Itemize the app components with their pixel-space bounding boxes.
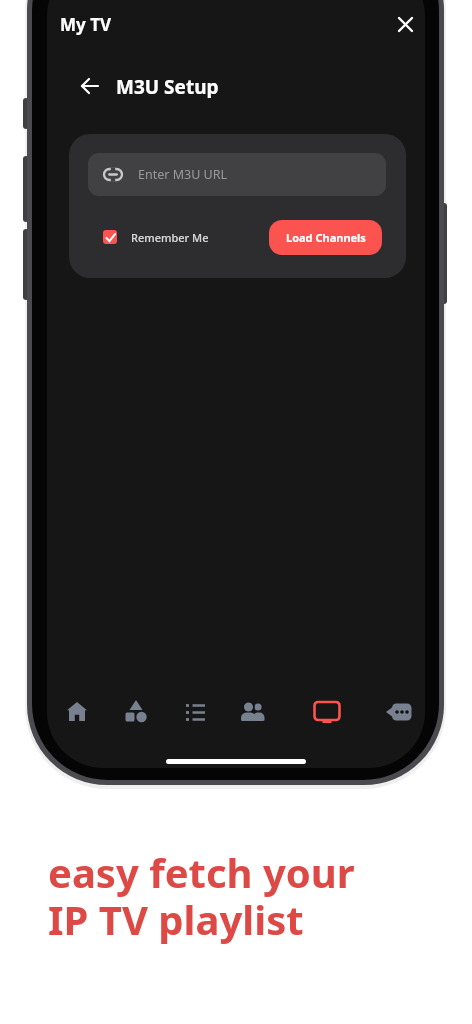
staticText: Load Channels — [286, 230, 366, 245]
button[interactable] — [114, 690, 158, 734]
button[interactable]: Enter M3U URL — [88, 153, 386, 196]
button[interactable]: Load Channels — [269, 220, 382, 255]
staticText: easy fetch your IP TV playlist — [48, 845, 355, 947]
staticText: Enter M3U URL — [138, 166, 227, 183]
button[interactable] — [55, 690, 99, 734]
staticText: My TV — [60, 13, 112, 36]
button[interactable] — [389, 12, 421, 36]
button[interactable] — [78, 74, 102, 98]
button[interactable] — [231, 690, 275, 734]
button[interactable] — [103, 230, 117, 244]
staticText: M3U Setup — [116, 74, 219, 98]
button[interactable] — [377, 690, 421, 734]
staticText: Remember Me — [131, 230, 209, 245]
button[interactable] — [174, 690, 218, 734]
button[interactable] — [305, 690, 349, 734]
